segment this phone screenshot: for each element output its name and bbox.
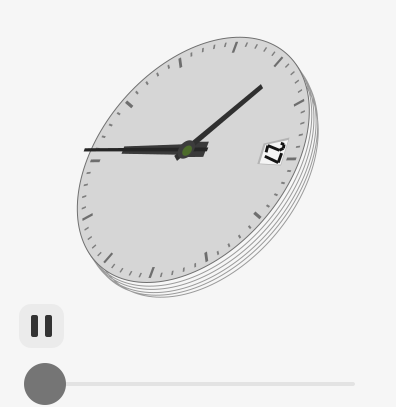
button[interactable]: Pause <box>19 304 64 348</box>
